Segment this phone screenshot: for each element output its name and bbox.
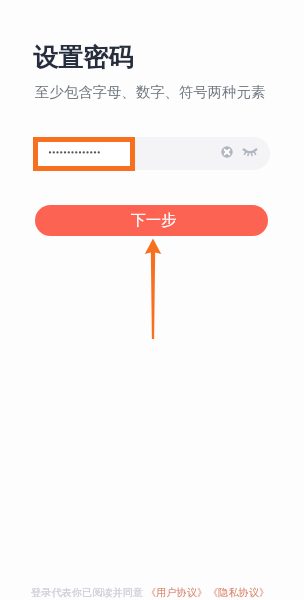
button[interactable]: Clear	[217, 142, 237, 162]
button[interactable]: Show password	[240, 142, 260, 162]
button[interactable]: Clear	[33, 137, 270, 170]
button[interactable]: 《用户协议》	[146, 586, 208, 599]
staticText: 至少包含字母、数字、符号两种元素	[35, 83, 266, 101]
button[interactable]: 《隐私协议》	[208, 586, 270, 599]
staticText: 设置密码	[33, 42, 133, 73]
staticText: 下一步	[131, 211, 176, 230]
staticText: 登录代表你已阅读并同意	[31, 585, 146, 599]
button[interactable]: 下一步	[35, 205, 268, 236]
